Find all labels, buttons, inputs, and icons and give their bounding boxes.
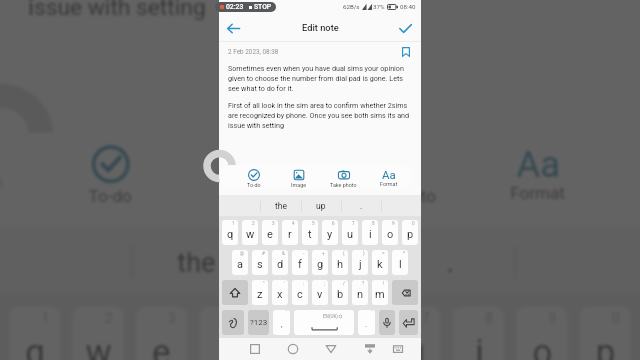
button[interactable]: = (372, 250, 388, 275)
button[interactable]: Save note (396, 19, 414, 37)
button[interactable]: 1 (9, 307, 60, 360)
button[interactable]: ' (273, 310, 290, 335)
button[interactable]: ; (312, 280, 328, 305)
staticText: i (369, 228, 372, 241)
button[interactable]: 7 (342, 220, 358, 245)
staticText: t (282, 332, 295, 360)
staticText: Aa (516, 142, 561, 183)
button[interactable]: 9 (516, 307, 567, 360)
button[interactable]: 5 (263, 307, 314, 360)
button[interactable]: 4 (199, 307, 250, 360)
staticText: e (267, 228, 273, 241)
staticText: 0 (412, 221, 415, 226)
staticText: ) (363, 251, 365, 256)
button[interactable]: To-do (38, 132, 181, 208)
button[interactable]: / (332, 280, 348, 305)
staticText: 4 (231, 310, 241, 326)
staticText: ' (286, 310, 287, 315)
button[interactable]: Enter (399, 310, 418, 335)
button[interactable]: @ (232, 250, 248, 275)
button[interactable]: : (292, 280, 308, 305)
staticText: & (282, 251, 285, 256)
button[interactable]: Take photo (323, 132, 466, 208)
button[interactable]: Image (276, 165, 321, 189)
button[interactable]: # (252, 250, 268, 275)
button[interactable]: up (260, 227, 387, 294)
button[interactable]: ? (352, 280, 368, 305)
staticText: u (347, 228, 354, 241)
button[interactable]: 02:23 (215, 2, 276, 12)
staticText: the (177, 247, 215, 278)
button[interactable]: Stickers (222, 310, 244, 335)
staticText: 2 Feb 2023, 08:38 (228, 48, 279, 56)
button[interactable]: Voice input (379, 310, 395, 335)
button[interactable]: Aa (466, 132, 608, 208)
button[interactable]: the (130, 227, 260, 294)
button[interactable]: Image (180, 132, 323, 208)
button[interactable]: Take photo (321, 165, 366, 189)
button[interactable]: Space (294, 310, 354, 335)
button[interactable]: ' (272, 280, 288, 305)
button[interactable]: Back (322, 340, 340, 358)
button[interactable]: 7 (390, 307, 440, 360)
button[interactable]: 2 (73, 307, 123, 360)
button[interactable]: - (292, 250, 308, 275)
button[interactable]: 6 (322, 220, 338, 245)
button[interactable]: 5 (302, 220, 318, 245)
button[interactable]: 9 (382, 220, 398, 245)
staticText: k (377, 258, 383, 271)
button[interactable]: ! (372, 280, 388, 305)
button[interactable]: & (272, 250, 288, 275)
button[interactable]: Backspace (392, 280, 418, 305)
button[interactable]: 8 (453, 307, 504, 360)
button[interactable]: 0 (402, 220, 418, 245)
button[interactable]: 3 (262, 220, 278, 245)
button[interactable]: + (312, 250, 328, 275)
button[interactable]: ?123 (248, 310, 269, 335)
button[interactable]: ' (358, 310, 375, 335)
button[interactable]: Recent apps (246, 340, 264, 358)
staticText: u (406, 332, 428, 360)
staticText: . (360, 201, 363, 211)
button[interactable]: 2 (242, 220, 258, 245)
staticText: ( (343, 251, 345, 256)
button[interactable]: Aa (366, 165, 411, 189)
button[interactable]: Hide keyboard (361, 340, 379, 358)
button[interactable]: 1 (222, 220, 238, 245)
button[interactable]: 6 (326, 307, 377, 360)
button[interactable]: 8 (362, 220, 378, 245)
button[interactable]: ) (352, 250, 368, 275)
button[interactable]: Bookmark (399, 45, 412, 58)
staticText: q (25, 332, 47, 360)
button[interactable]: Switch keyboard (389, 340, 407, 358)
button[interactable]: 0 (580, 307, 631, 360)
button[interactable]: Home (284, 340, 302, 358)
button[interactable]: " (252, 280, 268, 305)
button[interactable]: 3 (136, 307, 187, 360)
staticText: @ (240, 251, 245, 256)
button[interactable]: ( (332, 250, 348, 275)
staticText: y (327, 228, 333, 241)
button[interactable]: the (260, 195, 301, 216)
staticText: First of all look in the sim area to con… (228, 101, 412, 129)
button[interactable]: Shift (222, 280, 248, 305)
button[interactable]: . (387, 227, 513, 294)
staticText: w (85, 332, 114, 360)
staticText: Sometimes even when you have dual sims y… (228, 64, 412, 92)
button[interactable]: 4 (282, 220, 298, 245)
button[interactable]: up (301, 195, 341, 216)
button[interactable]: * (392, 250, 408, 275)
button[interactable]: Back (224, 19, 242, 37)
button[interactable]: To-do (231, 165, 276, 189)
staticText: o (532, 332, 555, 360)
